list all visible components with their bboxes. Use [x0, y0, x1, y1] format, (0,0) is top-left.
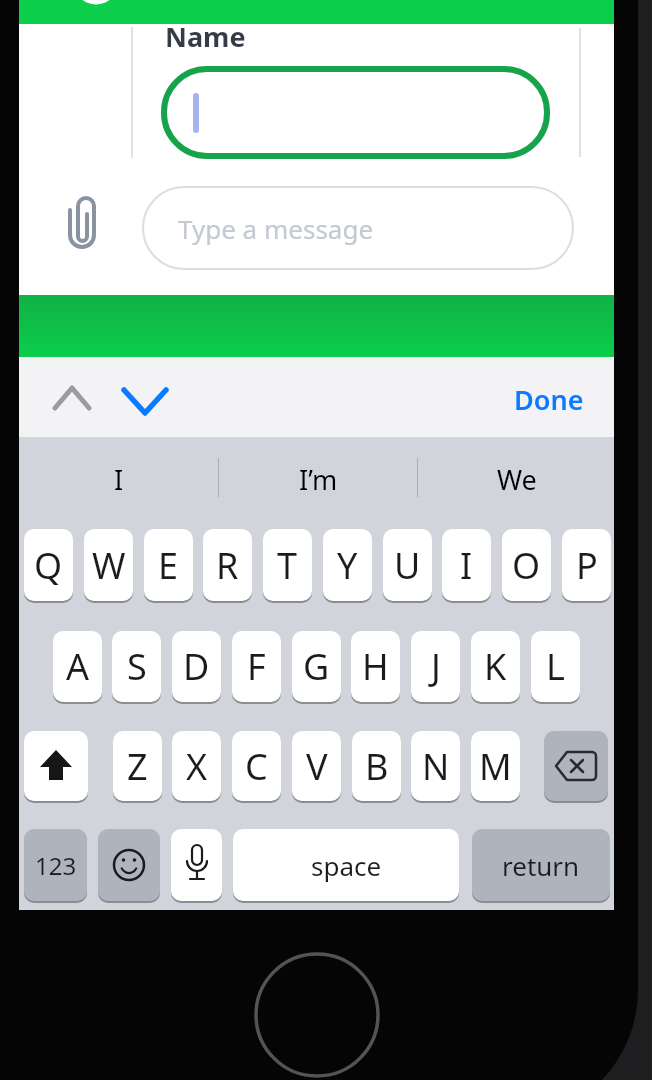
- staticText: F: [247, 642, 266, 691]
- button[interactable]: G: [292, 631, 341, 702]
- staticText: B: [365, 742, 389, 791]
- button[interactable]: [24, 731, 88, 801]
- button[interactable]: C: [232, 731, 281, 801]
- button[interactable]: B: [352, 731, 401, 801]
- button[interactable]: Done: [499, 381, 599, 415]
- button[interactable]: Type a message: [142, 186, 574, 270]
- staticText: W: [92, 541, 126, 590]
- button[interactable]: W: [84, 529, 133, 601]
- staticText: We: [497, 461, 537, 498]
- staticText: L: [546, 642, 565, 691]
- button[interactable]: I: [79, 460, 159, 498]
- button[interactable]: [98, 829, 160, 901]
- staticText: T: [277, 541, 298, 590]
- button[interactable]: K: [471, 631, 520, 702]
- staticText: Type a message: [178, 211, 374, 246]
- staticText: 123: [35, 849, 77, 882]
- button[interactable]: Z: [113, 731, 162, 801]
- staticText: M: [479, 742, 512, 791]
- button[interactable]: T: [263, 529, 312, 601]
- staticText: Name: [165, 18, 246, 52]
- staticText: K: [484, 642, 507, 691]
- staticText: V: [306, 742, 328, 791]
- button[interactable]: space: [233, 829, 459, 901]
- staticText: R: [216, 541, 239, 590]
- staticText: space: [311, 848, 382, 883]
- button[interactable]: V: [292, 731, 341, 801]
- button[interactable]: F: [232, 631, 281, 702]
- button[interactable]: [544, 731, 608, 801]
- staticText: I’m: [299, 461, 338, 498]
- button[interactable]: A: [53, 631, 102, 702]
- staticText: E: [158, 541, 179, 590]
- staticText: H: [362, 642, 389, 691]
- button[interactable]: N: [411, 731, 460, 801]
- button[interactable]: U: [383, 529, 432, 601]
- button[interactable]: 123: [24, 829, 87, 901]
- button[interactable]: I’m: [278, 460, 358, 498]
- staticText: I: [460, 541, 473, 590]
- button[interactable]: Y: [323, 529, 372, 601]
- staticText: Q: [34, 541, 63, 590]
- button[interactable]: [171, 829, 222, 901]
- button[interactable]: E: [144, 529, 193, 601]
- staticText: J: [431, 642, 441, 691]
- button[interactable]: R: [203, 529, 252, 601]
- staticText: C: [245, 742, 268, 791]
- button[interactable]: L: [531, 631, 580, 702]
- staticText: N: [422, 742, 450, 791]
- staticText: return: [502, 848, 580, 883]
- staticText: I: [114, 461, 124, 498]
- button[interactable]: We: [477, 460, 557, 498]
- button[interactable]: [161, 66, 550, 159]
- staticText: P: [576, 541, 598, 590]
- button[interactable]: S: [112, 631, 161, 702]
- button[interactable]: Q: [24, 529, 73, 601]
- staticText: D: [183, 642, 210, 691]
- staticText: A: [66, 642, 90, 691]
- button[interactable]: P: [562, 529, 611, 601]
- staticText: U: [394, 541, 421, 590]
- staticText: Y: [337, 541, 358, 590]
- staticText: X: [186, 742, 208, 791]
- button[interactable]: M: [471, 731, 520, 801]
- staticText: Z: [127, 742, 148, 791]
- staticText: O: [512, 541, 541, 590]
- button[interactable]: H: [351, 631, 400, 702]
- button[interactable]: return: [472, 829, 610, 901]
- staticText: Done: [514, 381, 584, 415]
- button[interactable]: O: [502, 529, 551, 601]
- staticText: G: [303, 642, 330, 691]
- button[interactable]: D: [172, 631, 221, 702]
- button[interactable]: I: [442, 529, 491, 601]
- button[interactable]: J: [411, 631, 460, 702]
- staticText: S: [127, 642, 147, 691]
- button[interactable]: X: [172, 731, 221, 801]
